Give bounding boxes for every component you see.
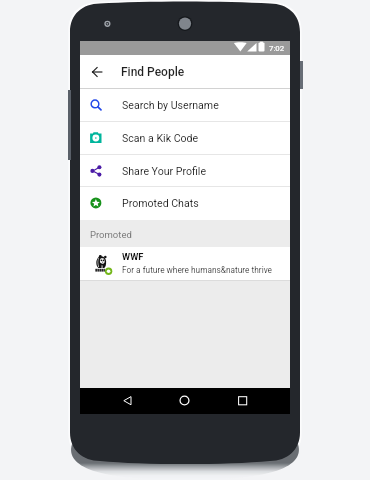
button[interactable]: Home: [171, 387, 197, 413]
staticText: Scan a Kik Code: [122, 132, 199, 144]
staticText: WWF: [122, 251, 144, 262]
button[interactable]: Recent apps: [229, 387, 255, 413]
staticText: Promoted Chats: [122, 197, 199, 209]
button[interactable]: Search by Username: [80, 88, 290, 121]
button[interactable]: Back: [114, 387, 140, 413]
button[interactable]: Promoted Chats: [80, 186, 290, 219]
button[interactable]: Scan a Kik Code: [80, 121, 290, 154]
button[interactable]: Share Your Profile: [80, 154, 290, 187]
staticText: Share Your Profile: [122, 165, 207, 177]
staticText: Promoted: [90, 229, 132, 240]
staticText: Find People: [121, 65, 185, 79]
button[interactable]: WWF: [80, 247, 290, 280]
staticText: For a future where humans&nature thrive: [122, 265, 273, 275]
staticText: Search by Username: [122, 99, 219, 111]
staticText: 7:02: [269, 44, 285, 53]
button[interactable]: Navigate up: [80, 55, 111, 88]
